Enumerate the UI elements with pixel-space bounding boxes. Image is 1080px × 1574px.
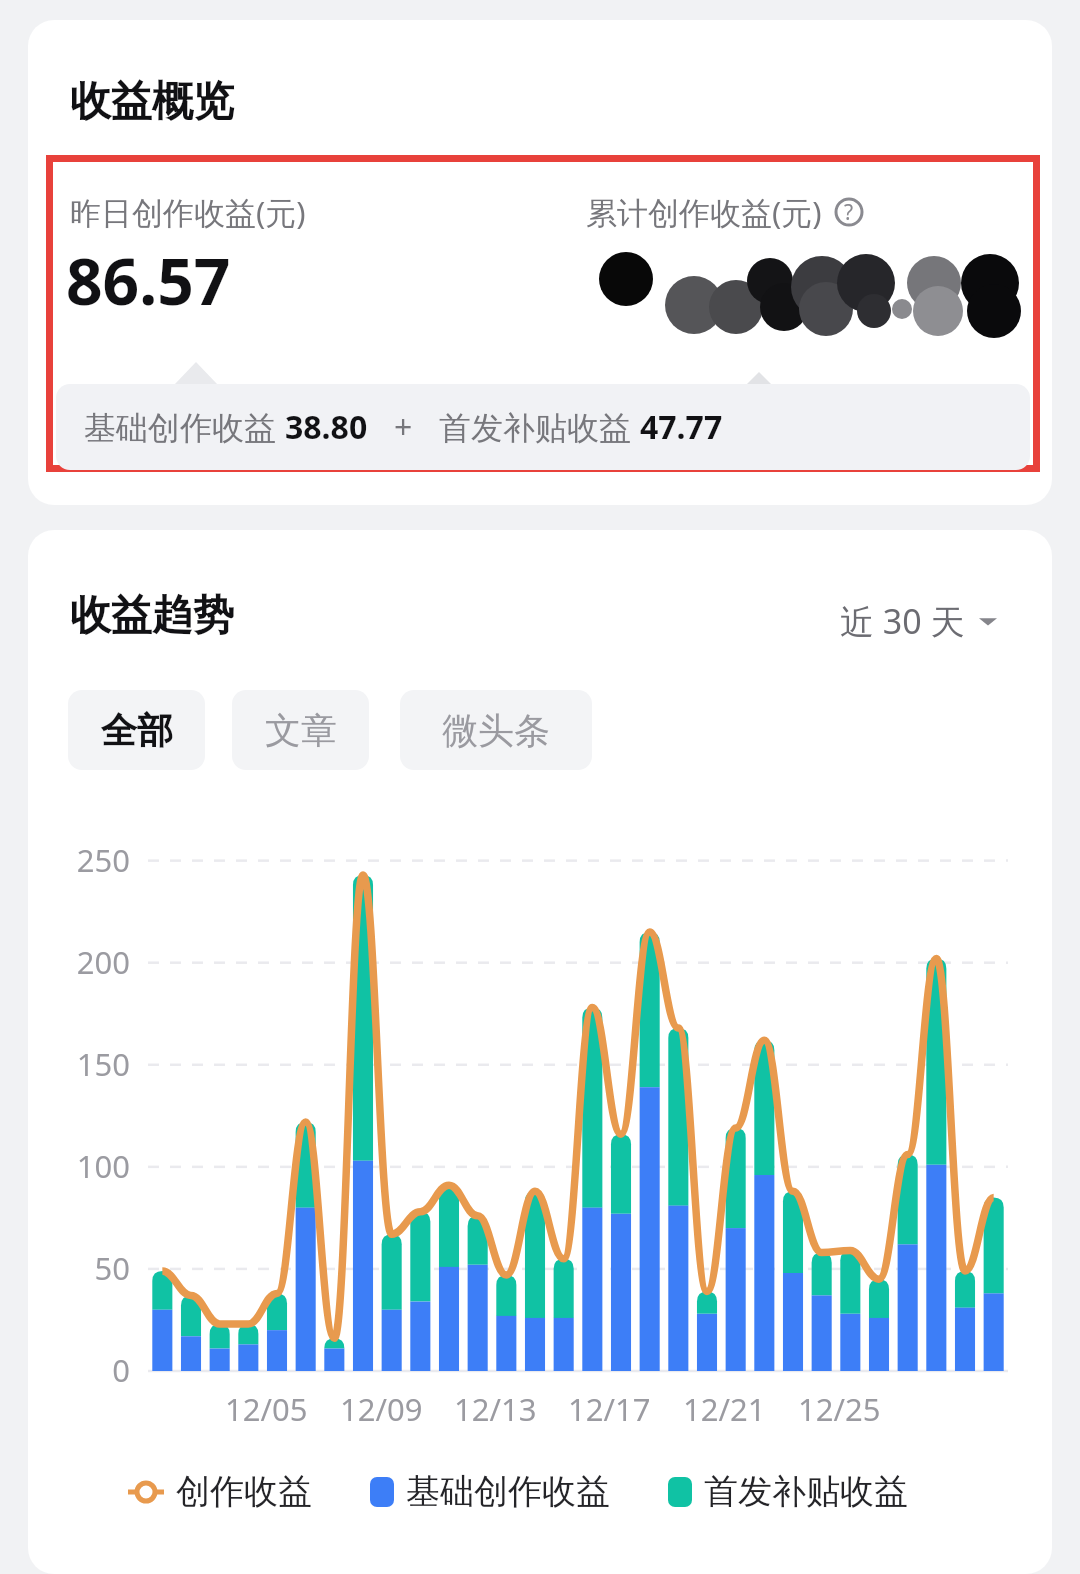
staticText: 86.57 (66, 237, 231, 324)
staticText: 38.80 (285, 405, 368, 449)
staticText: 收益趋势 (70, 590, 234, 642)
staticText: 12/09 (340, 1388, 423, 1430)
staticText: 12/13 (454, 1388, 537, 1430)
button[interactable]: 创作收益 (128, 1470, 312, 1513)
staticText: 150 (42, 1043, 130, 1085)
button[interactable]: 累计创作收益(元) (586, 191, 864, 233)
staticText: 基础创作收益 (406, 1470, 610, 1513)
staticText: 12/17 (568, 1388, 651, 1430)
staticText: 累计创作收益(元) (586, 191, 822, 233)
button[interactable]: 昨日创作收益(元) (46, 155, 1040, 472)
staticText: 文章 (265, 708, 337, 753)
staticText: 全部 (101, 708, 173, 753)
button[interactable]: 基础创作收益 (56, 384, 1030, 470)
staticText: 47.77 (640, 405, 723, 449)
staticText: 12/25 (798, 1388, 881, 1430)
button[interactable]: 文章 (232, 690, 369, 770)
button[interactable]: 全部 (68, 690, 205, 770)
staticText: 微头条 (442, 708, 550, 753)
staticText: 0 (42, 1349, 130, 1391)
staticText: ? (844, 198, 854, 227)
button[interactable]: 近 30 天 (840, 598, 999, 644)
staticText: 100 (42, 1145, 130, 1187)
staticText: 12/21 (683, 1388, 766, 1430)
staticText: 首发补贴收益 (704, 1470, 908, 1513)
staticText: 200 (42, 941, 130, 983)
staticText: 昨日创作收益(元) (70, 191, 306, 233)
button[interactable]: 微头条 (400, 690, 592, 770)
other: Help (834, 197, 864, 227)
staticText: 首发补贴收益 (439, 405, 640, 449)
staticText: + (394, 405, 413, 449)
button[interactable]: 首发补贴收益 (668, 1470, 908, 1513)
staticText: 50 (42, 1247, 130, 1289)
staticText: 近 30 天 (840, 598, 965, 644)
staticText: 创作收益 (176, 1470, 312, 1513)
staticText: 收益概览 (70, 76, 234, 128)
staticText: 12/05 (225, 1388, 308, 1430)
staticText: 250 (42, 839, 130, 881)
staticText: 基础创作收益 (84, 405, 285, 449)
button[interactable]: 基础创作收益 (370, 1470, 610, 1513)
